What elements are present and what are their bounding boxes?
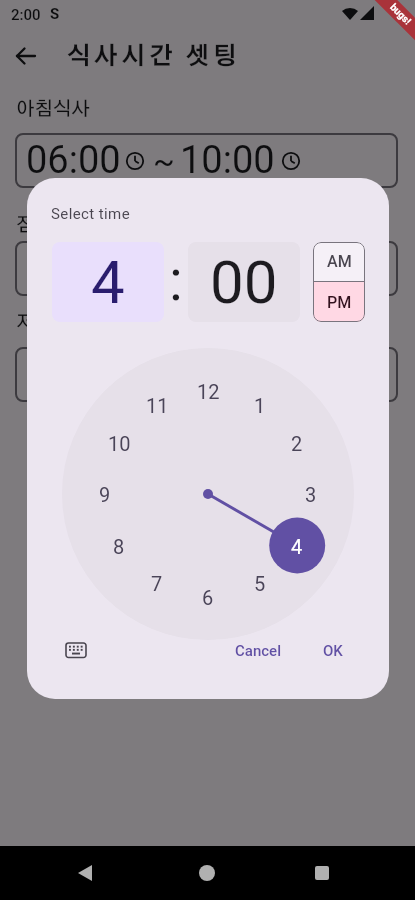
- staticText: 10:00: [180, 352, 275, 397]
- staticText: 10:00: [180, 246, 275, 291]
- staticText: 06:00: [26, 138, 121, 183]
- staticText: 00: [210, 247, 278, 317]
- staticText: 06:00: [26, 352, 121, 397]
- button[interactable]: 06:00: [15, 133, 398, 188]
- staticText: 4: [91, 247, 125, 317]
- button[interactable]: [10, 40, 42, 72]
- staticText: bugs!: [387, 1, 413, 27]
- staticText: 10:00: [180, 138, 275, 183]
- staticText: 1: [254, 394, 266, 417]
- button[interactable]: 00: [188, 242, 300, 322]
- staticText: OK: [323, 642, 343, 660]
- staticText: ~: [153, 142, 175, 180]
- staticText: 9: [99, 483, 111, 506]
- staticText: 2: [291, 432, 303, 455]
- button[interactable]: OK: [311, 636, 355, 666]
- button[interactable]: 06:00: [15, 347, 398, 402]
- staticText: PM: [327, 293, 352, 312]
- staticText: 저녁식사: [16, 313, 90, 332]
- button[interactable]: AM: [313, 242, 365, 281]
- staticText: 8: [113, 535, 125, 558]
- staticText: 5: [254, 572, 266, 595]
- staticText: ~: [153, 250, 175, 288]
- staticText: 6: [202, 586, 214, 609]
- staticText: S: [50, 5, 60, 23]
- button[interactable]: [70, 858, 100, 888]
- staticText: :: [169, 247, 183, 314]
- staticText: 06:00: [26, 246, 121, 291]
- staticText: Cancel: [235, 642, 282, 660]
- button[interactable]: [307, 858, 337, 888]
- staticText: 11: [146, 394, 169, 417]
- button[interactable]: PM: [313, 282, 365, 322]
- staticText: 4: [291, 535, 303, 558]
- button[interactable]: Cancel: [225, 636, 291, 666]
- staticText: 7: [151, 572, 163, 595]
- staticText: 3: [305, 483, 317, 506]
- staticText: 12: [197, 380, 220, 403]
- staticText: Select time: [51, 205, 131, 223]
- staticText: 2:00: [11, 6, 41, 24]
- button[interactable]: 4: [52, 242, 164, 322]
- staticText: 아침식사: [16, 100, 90, 119]
- staticText: 점심식사: [16, 216, 90, 235]
- button[interactable]: [192, 858, 222, 888]
- button[interactable]: 06:00: [15, 241, 398, 296]
- staticText: 10: [108, 432, 131, 455]
- button[interactable]: [63, 637, 89, 663]
- staticText: 식사시간 셋팅: [67, 45, 241, 69]
- staticText: AM: [327, 252, 352, 271]
